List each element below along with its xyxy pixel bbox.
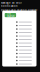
staticText: details and sharing Preview (1, 9, 37, 12)
staticText: Manage all your notification (1, 1, 22, 8)
staticText: Get Started (7, 12, 14, 18)
